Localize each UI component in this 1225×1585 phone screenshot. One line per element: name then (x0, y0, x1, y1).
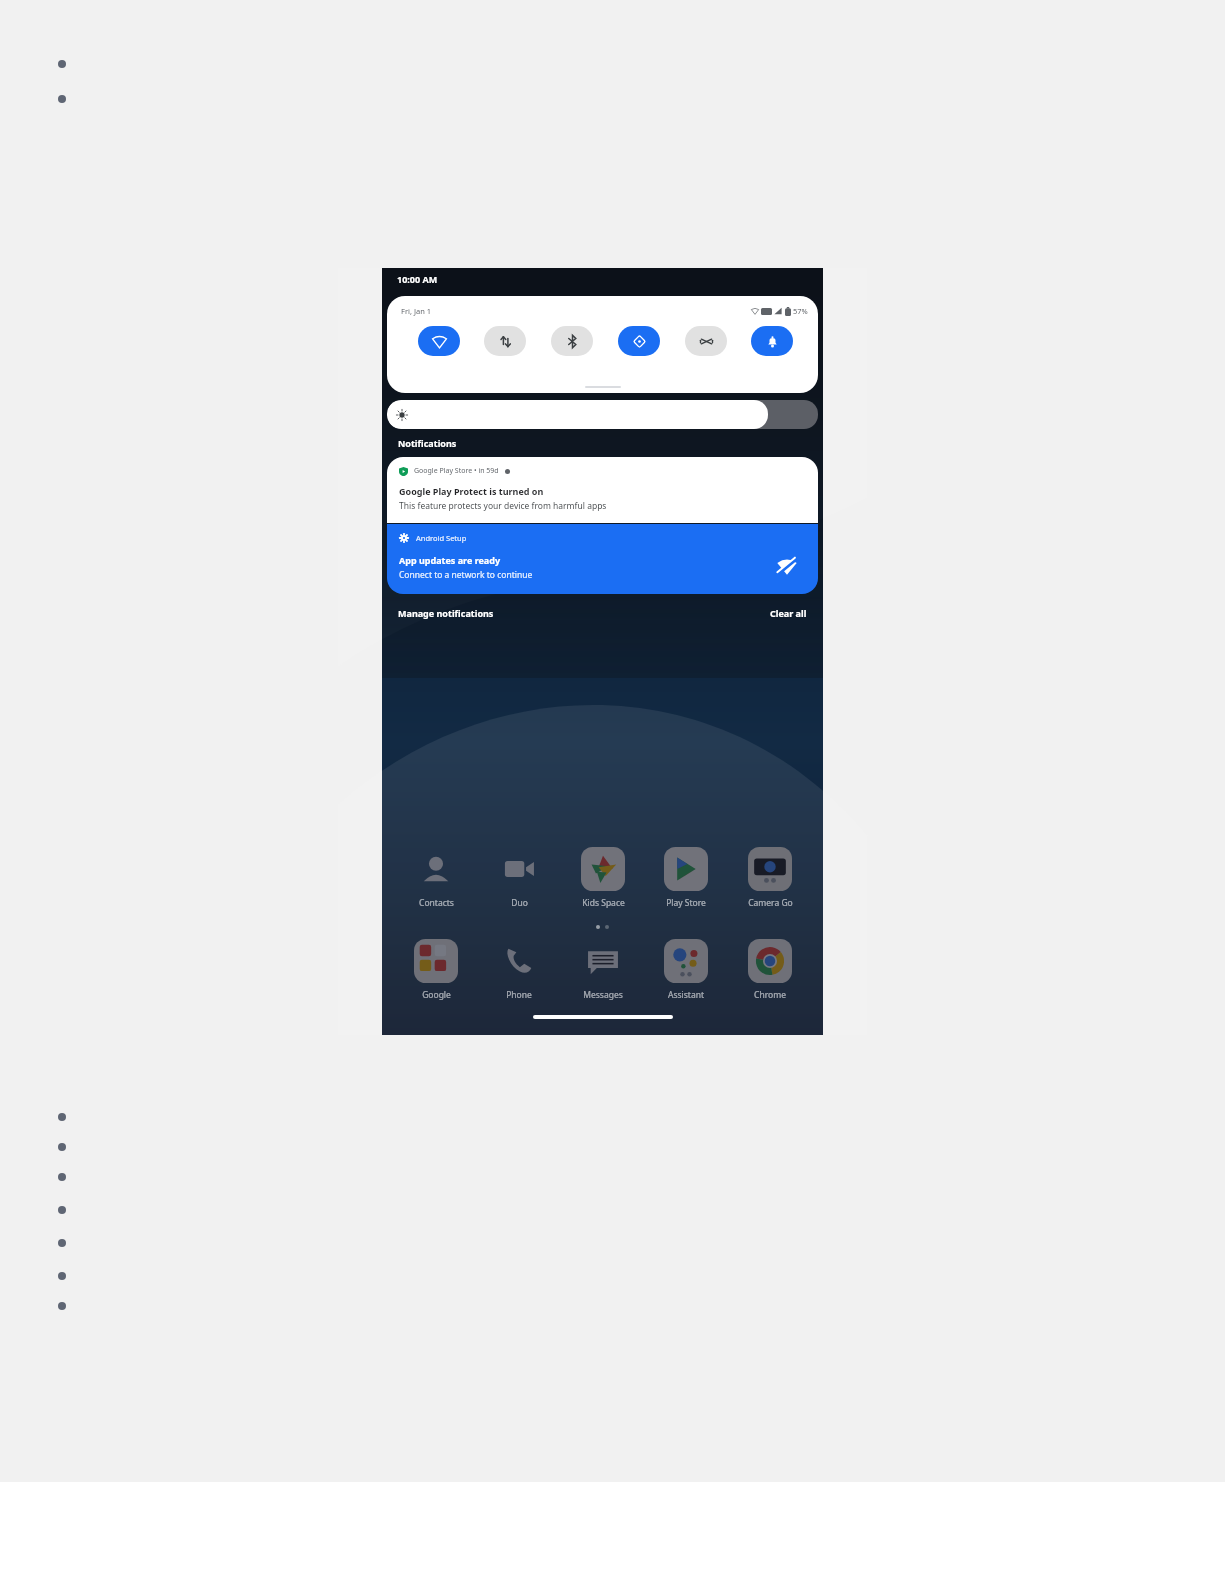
staticText: Google Play Protect is turned on (399, 485, 544, 497)
staticText: 10:00 AM (397, 273, 438, 285)
button[interactable]: Do not disturb (751, 326, 793, 356)
staticText: Phone (506, 989, 532, 1001)
staticText: This feature protects your device from h… (399, 500, 607, 512)
button[interactable]: Camera Go (732, 847, 808, 909)
staticText: 57% (793, 306, 808, 316)
button[interactable]: Bluetooth (551, 326, 593, 356)
staticText: Contacts (419, 897, 454, 909)
staticText: Manage notifications (398, 607, 494, 619)
staticText: Connect to a network to continue (399, 569, 533, 581)
staticText: Fri, Jan 1 (401, 306, 432, 316)
button[interactable]: Assistant (648, 939, 724, 1001)
staticText: Clear all (770, 607, 807, 619)
button[interactable]: Kids Space (565, 847, 641, 909)
button[interactable]: Mobile data (484, 326, 526, 356)
staticText: Messages (583, 989, 623, 1001)
button[interactable]: Android Setup (387, 524, 818, 594)
staticText: Camera Go (748, 897, 793, 909)
staticText: Kids Space (582, 897, 625, 909)
button[interactable]: Chrome (732, 939, 808, 1001)
staticText: Google (422, 989, 451, 1001)
staticText: Assistant (668, 989, 704, 1001)
staticText: Google Play Store • in 59d (414, 466, 499, 476)
button[interactable]: Google Play Store • in 59d (387, 457, 818, 523)
button[interactable]: Google (398, 939, 474, 1001)
staticText: Android Setup (416, 533, 467, 543)
button[interactable]: Auto-rotate (618, 326, 660, 356)
button[interactable]: Clear all (770, 607, 807, 619)
staticText: App updates are ready (399, 554, 501, 566)
staticText: Notifications (398, 437, 457, 449)
staticText: Play Store (666, 897, 706, 909)
staticText: 10:00 (500, 446, 657, 530)
button[interactable]: Messages (565, 939, 641, 1001)
button[interactable]: Brightness (387, 400, 818, 429)
button[interactable]: Duo (481, 847, 557, 909)
button[interactable]: Contacts (398, 847, 474, 909)
staticText: Chrome (754, 989, 786, 1001)
button[interactable]: Manage notifications (398, 607, 494, 619)
button[interactable]: Wi-Fi (418, 326, 460, 356)
button[interactable]: Play Store (648, 847, 724, 909)
staticText: Duo (511, 897, 528, 909)
button[interactable]: Flashlight (685, 326, 727, 356)
button[interactable]: Phone (481, 939, 557, 1001)
